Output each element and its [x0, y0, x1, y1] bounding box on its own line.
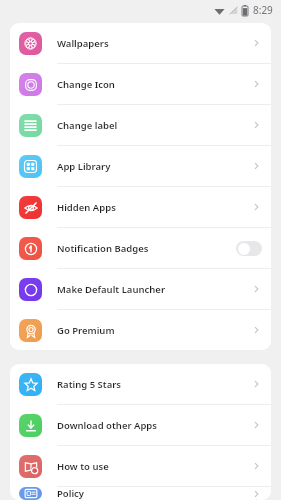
other: Open App Library [252, 161, 262, 171]
other: Toggle Notification Badges [236, 241, 262, 256]
staticText: Change Icon [57, 78, 252, 91]
button[interactable]: Change label [10, 105, 271, 146]
button[interactable]: Wallpapers [10, 23, 271, 64]
staticText: Policy [57, 487, 252, 500]
other: Open How to use [252, 461, 262, 471]
staticText: Change label [57, 119, 252, 132]
other: Open Make Default Launcher [252, 284, 262, 294]
other: Open Wallpapers [252, 38, 262, 48]
staticText: Rating 5 Stars [57, 378, 252, 391]
staticText: How to use [57, 460, 252, 473]
button[interactable]: Hidden Apps [10, 187, 271, 228]
staticText: Notification Badges [57, 242, 236, 255]
other: Open Change label [252, 120, 262, 130]
button[interactable]: Rating 5 Stars [10, 364, 271, 405]
staticText: Hidden Apps [57, 201, 252, 214]
staticText: Go Premium [57, 324, 252, 337]
other: Open Change Icon [252, 79, 262, 89]
button[interactable]: Notification Badges [10, 228, 271, 269]
other: Open Policy [252, 489, 262, 499]
button[interactable]: Policy [10, 487, 271, 500]
other: Open Download other Apps [252, 420, 262, 430]
button[interactable]: App Library [10, 146, 271, 187]
button[interactable]: Change Icon [10, 64, 271, 105]
staticText: 8:29 [253, 3, 273, 17]
button[interactable]: Download other Apps [10, 405, 271, 446]
button[interactable]: How to use [10, 446, 271, 487]
button[interactable]: Make Default Launcher [10, 269, 271, 310]
staticText: Wallpapers [57, 37, 252, 50]
staticText: Download other Apps [57, 419, 252, 432]
staticText: App Library [57, 160, 252, 173]
button[interactable]: Go Premium [10, 310, 271, 350]
other: Open Go Premium [252, 325, 262, 335]
other: Open Rating 5 Stars [252, 379, 262, 389]
staticText: Make Default Launcher [57, 283, 252, 296]
other: Open Hidden Apps [252, 202, 262, 212]
